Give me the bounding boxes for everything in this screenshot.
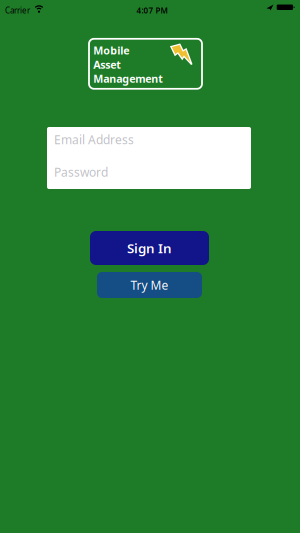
staticText: 4:07 PM <box>136 5 167 16</box>
staticText: Asset <box>93 57 121 72</box>
button[interactable]: Password <box>47 159 251 184</box>
staticText: Mobile <box>93 43 129 57</box>
staticText: Management <box>93 72 163 86</box>
staticText: Sign In <box>127 239 172 257</box>
staticText: Try Me <box>130 277 168 293</box>
button[interactable]: Email Address <box>47 127 251 152</box>
button[interactable]: Sign In <box>90 231 209 265</box>
staticText: Password <box>54 164 108 180</box>
staticText: Email Address <box>54 131 134 147</box>
staticText: Carrier <box>5 5 30 16</box>
button[interactable]: Try Me <box>97 272 202 298</box>
